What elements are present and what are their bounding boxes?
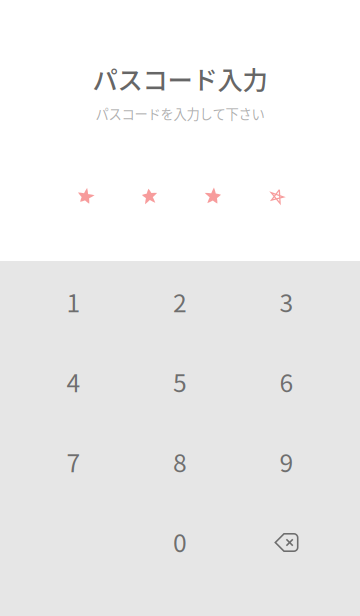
button[interactable]: Delete xyxy=(233,501,340,581)
staticText: 4 xyxy=(66,364,80,399)
button[interactable]: 2 xyxy=(127,261,233,341)
staticText: 2 xyxy=(173,284,187,319)
button[interactable]: 4 xyxy=(20,341,127,421)
button[interactable]: 6 xyxy=(233,341,340,421)
staticText: 5 xyxy=(173,364,187,399)
button[interactable]: 9 xyxy=(233,421,340,501)
staticText: 6 xyxy=(279,364,293,399)
button[interactable]: 8 xyxy=(127,421,233,501)
staticText: 0 xyxy=(173,524,187,559)
staticText: 7 xyxy=(66,444,80,479)
staticText: 1 xyxy=(66,284,80,319)
button[interactable]: 3 xyxy=(233,261,340,341)
staticText: 9 xyxy=(279,444,293,479)
staticText: 3 xyxy=(279,284,293,319)
button[interactable]: 1 xyxy=(20,261,127,341)
staticText: パスコード入力 xyxy=(92,60,267,97)
staticText: 8 xyxy=(173,444,187,479)
button[interactable]: 5 xyxy=(127,341,233,421)
button[interactable]: 7 xyxy=(20,421,127,501)
button[interactable]: 0 xyxy=(127,501,233,581)
staticText: パスコードを入力して下さい xyxy=(95,104,264,123)
